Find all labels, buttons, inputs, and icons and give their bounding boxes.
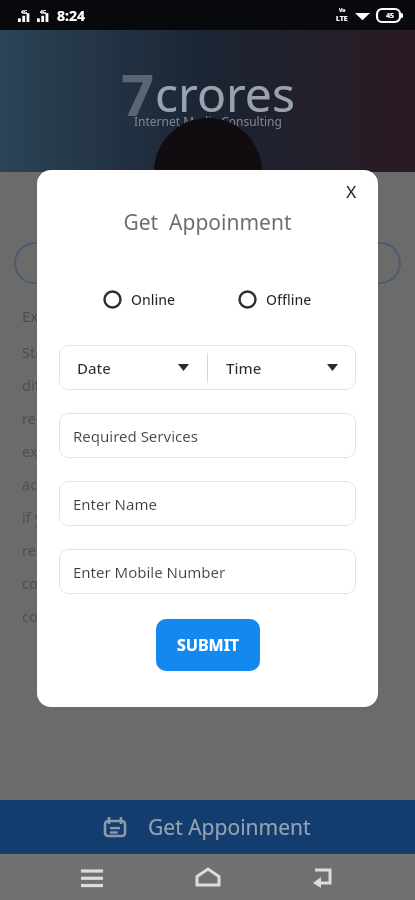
button[interactable]: Enter Mobile Number [59, 549, 356, 594]
staticText: 45 [386, 11, 395, 21]
staticText: Time [226, 358, 262, 378]
button[interactable]: Home [184, 854, 232, 900]
button[interactable]: Back [299, 854, 347, 900]
button[interactable]: Time [208, 345, 356, 390]
button[interactable]: Date [59, 345, 207, 390]
staticText: confusion. Nothing outweighs experience … [22, 573, 360, 593]
staticText: Vo [339, 7, 346, 14]
button[interactable]: Close [336, 176, 366, 206]
staticText: experience. Experience is the only key t… [22, 441, 297, 461]
staticText: Offline [266, 290, 312, 309]
staticText: Starting a business is surely the most [22, 342, 276, 362]
staticText: 4G [40, 9, 47, 16]
staticText: 4G [21, 9, 28, 16]
button[interactable]: Recent apps [68, 854, 116, 900]
staticText: 7 [121, 54, 155, 133]
button[interactable]: Get Appoinment [0, 800, 415, 854]
staticText: difficult part but it is always been a [22, 375, 259, 395]
staticText: comes to achieving success in Business l… [22, 606, 344, 626]
staticText: SUBMIT [177, 634, 240, 656]
staticText: Get Appoinment [148, 813, 311, 842]
staticText: Date [77, 358, 111, 378]
staticText: Required Services [73, 426, 198, 446]
staticText: Internet Media Consulting [134, 113, 282, 129]
staticText: reality that it is never easy unless one… [22, 408, 305, 428]
button[interactable]: Offline [234, 286, 316, 313]
staticText: Experience [22, 306, 100, 326]
staticText: really hard to make his way through the … [22, 540, 370, 560]
staticText: crores [155, 61, 295, 126]
staticText: Online [131, 290, 176, 309]
button[interactable]: Enter Name [59, 481, 356, 526]
button[interactable]: Required Services [59, 413, 356, 458]
staticText: LTE [336, 14, 348, 24]
staticText: 8:24 [57, 6, 85, 25]
staticText: X [346, 180, 357, 203]
staticText: Enter Mobile Number [73, 562, 226, 582]
button[interactable]: SUBMIT [156, 619, 260, 671]
staticText: if you are a beginner, then surely it is [22, 507, 272, 527]
staticText: Enter Name [73, 494, 157, 514]
staticText: achieve what you want. However, though [22, 474, 300, 494]
button[interactable]: Online [99, 286, 180, 313]
staticText: Get Appoinment [37, 208, 378, 237]
